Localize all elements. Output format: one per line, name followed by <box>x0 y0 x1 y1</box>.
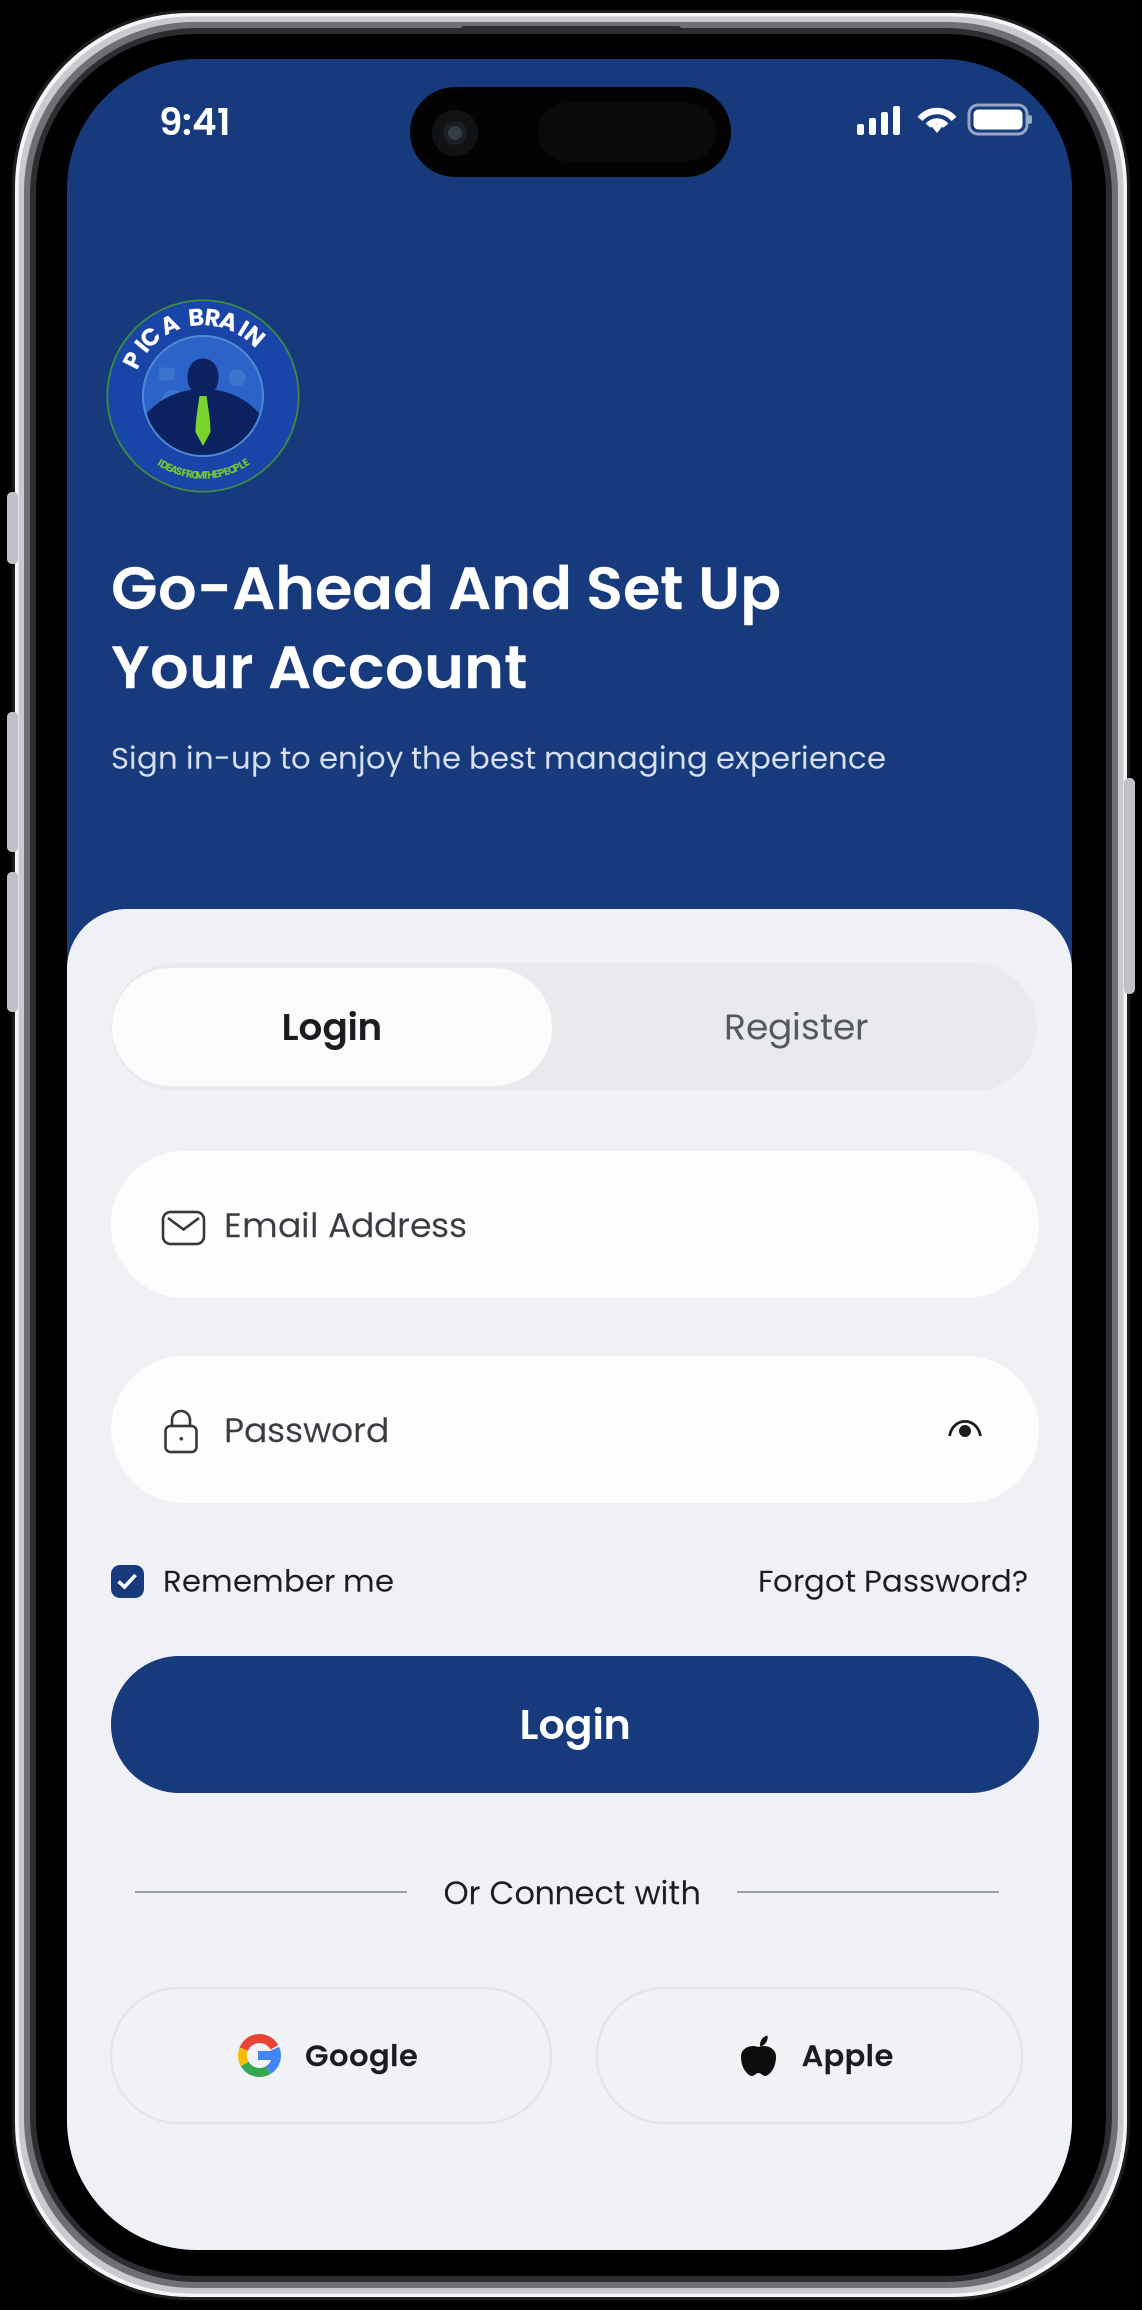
staticText: 9:41 <box>159 96 231 148</box>
staticText: E <box>243 455 249 470</box>
staticText: E <box>166 460 172 475</box>
staticText: Remember me <box>163 1559 394 1602</box>
staticText: N <box>246 320 264 353</box>
staticText: Google <box>305 2034 418 2077</box>
staticText: Login <box>281 1001 382 1053</box>
button[interactable]: Login <box>112 968 552 1086</box>
staticText: R <box>205 301 221 334</box>
staticText: Login <box>519 1696 630 1753</box>
button[interactable]: Email Address <box>111 1151 1039 1298</box>
staticText: Forgot Password? <box>758 1559 1028 1602</box>
staticText: P <box>218 465 225 480</box>
button[interactable]: Register <box>576 968 1016 1086</box>
button[interactable]: Remember me <box>111 1556 423 1606</box>
staticText: Or Connect with <box>443 1871 700 1915</box>
staticText: I <box>158 455 161 470</box>
staticText: H <box>207 467 215 482</box>
staticText: A <box>161 308 179 341</box>
staticText: Password <box>224 1406 389 1454</box>
staticText: Go-Ahead And Set Up <box>111 545 781 630</box>
staticText: Apple <box>801 2034 893 2077</box>
staticText: O <box>191 467 199 482</box>
staticText: Sign in-up to enjoy the best managing ex… <box>111 736 886 779</box>
staticText: A <box>170 462 178 477</box>
staticText: Register <box>724 1002 868 1052</box>
staticText: T <box>203 467 209 482</box>
button[interactable]: Forgot Password? <box>648 1556 1028 1606</box>
button[interactable]: Apple <box>597 1988 1022 2123</box>
staticText: O <box>228 462 236 477</box>
staticText: E <box>224 464 230 479</box>
staticText: A <box>220 304 238 338</box>
staticText: C <box>141 320 159 354</box>
staticText: B <box>188 300 204 334</box>
staticText: P <box>233 460 240 475</box>
staticText: L <box>239 458 244 472</box>
staticText: I <box>240 311 247 345</box>
button[interactable]: Google <box>111 1988 551 2123</box>
staticText: D <box>161 458 169 472</box>
button[interactable]: Login <box>111 1656 1039 1793</box>
staticText: S <box>176 464 183 479</box>
staticText: Your Account <box>111 624 528 709</box>
staticText: F <box>181 465 187 480</box>
staticText: E <box>213 466 219 481</box>
button[interactable]: Password <box>111 1356 1039 1503</box>
staticText: Email Address <box>224 1201 467 1249</box>
button[interactable]: Show password <box>928 1393 1002 1467</box>
staticText: R <box>186 466 193 481</box>
staticText: M <box>195 467 205 482</box>
staticText: I <box>138 329 145 363</box>
staticText: P <box>125 343 140 377</box>
